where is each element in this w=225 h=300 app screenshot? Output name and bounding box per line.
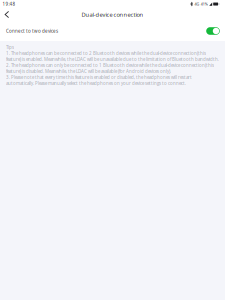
staticText: 4G [194, 1, 199, 7]
button[interactable]: Connect to two devices [0, 21, 225, 41]
staticText: 2. The headphones can only be connected … [6, 62, 214, 74]
staticText: 41% [201, 1, 208, 7]
staticText: 19:48 [2, 1, 15, 7]
staticText: 3. Please note that every time this feat… [6, 74, 192, 86]
button[interactable]: Back [0, 8, 13, 21]
staticText: Connect to two devices [6, 28, 58, 34]
staticText: 1. The headphones can be connected to 2 … [6, 50, 219, 62]
staticText: Tips [6, 44, 14, 50]
staticText: Dual-device connection [81, 11, 143, 18]
